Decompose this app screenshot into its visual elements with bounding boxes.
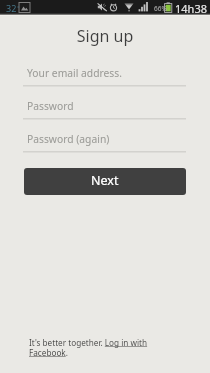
staticText: Sign up (0, 25, 210, 47)
staticText: 32 (6, 2, 17, 14)
button[interactable]: Password (again) (23, 133, 186, 153)
staticText: 14h38 (175, 1, 207, 16)
staticText: 66% (154, 4, 167, 13)
button[interactable]: Your email address. (23, 67, 186, 87)
button[interactable]: It's better together. Log in with Facebo… (29, 337, 188, 358)
staticText: Next (91, 172, 119, 189)
button[interactable]: Password (23, 100, 186, 120)
staticText: ° (17, 4, 20, 12)
other: Status bar (0, 0, 210, 16)
staticText: Password (27, 99, 74, 113)
staticText: It's better together. Log in with Facebo… (29, 337, 188, 358)
button[interactable]: Next (24, 168, 186, 195)
staticText: Password (again) (27, 132, 110, 146)
staticText: Your email address. (27, 66, 122, 80)
